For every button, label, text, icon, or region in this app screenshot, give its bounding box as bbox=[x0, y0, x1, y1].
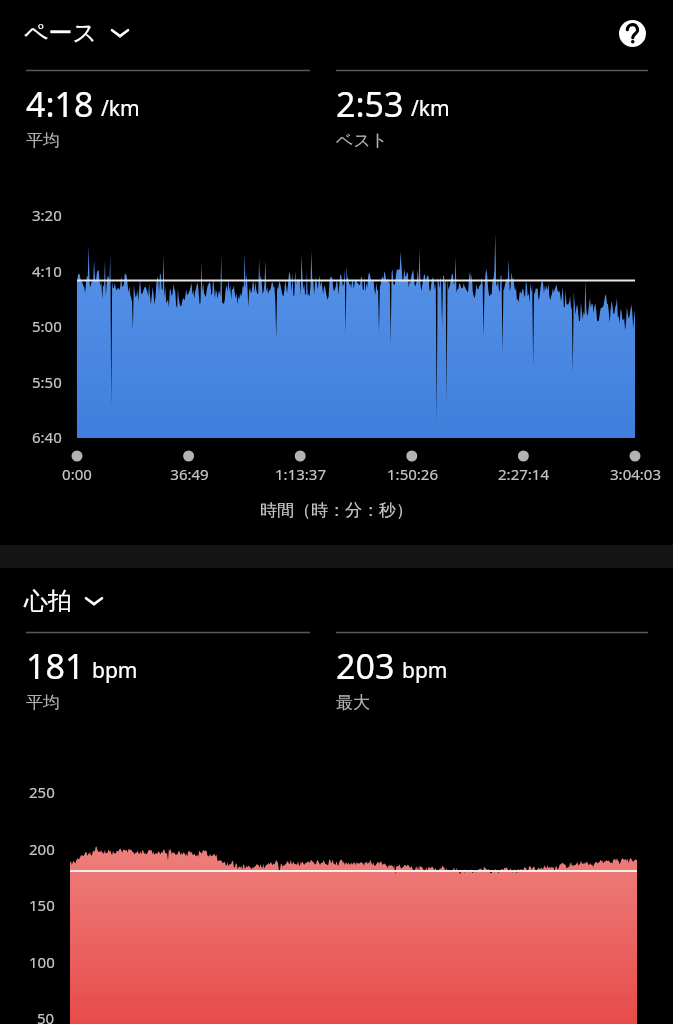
button[interactable]: ヘルプ bbox=[617, 18, 647, 48]
button[interactable]: 4:18 bbox=[26, 66, 310, 151]
staticText: 150 bbox=[29, 895, 55, 915]
button[interactable]: ペース bbox=[24, 18, 136, 48]
staticText: 1:13:37 bbox=[275, 464, 326, 484]
staticText: 5:50 bbox=[32, 372, 62, 392]
staticText: 250 bbox=[29, 782, 55, 802]
staticText: 平均 bbox=[26, 130, 60, 151]
staticText: 5:00 bbox=[32, 316, 62, 336]
staticText: bpm bbox=[402, 656, 448, 685]
button[interactable]: 181 bbox=[26, 628, 310, 713]
staticText: 最大 bbox=[336, 692, 370, 713]
staticText: /km bbox=[101, 94, 140, 123]
button[interactable]: 2:53 bbox=[336, 66, 648, 151]
staticText: 203 bbox=[336, 643, 395, 689]
staticText: 0:00 bbox=[62, 464, 92, 484]
staticText: 心拍 bbox=[24, 586, 72, 616]
button[interactable]: 心拍 bbox=[24, 586, 110, 616]
staticText: ベスト bbox=[336, 130, 389, 151]
button[interactable]: 203 bbox=[336, 628, 648, 713]
staticText: 2:53 bbox=[336, 81, 404, 127]
staticText: 4:10 bbox=[32, 261, 62, 281]
staticText: 平均 bbox=[26, 692, 60, 713]
staticText: 4:18 bbox=[26, 81, 94, 127]
staticText: /km bbox=[411, 94, 450, 123]
staticText: 100 bbox=[29, 952, 55, 972]
staticText: bpm bbox=[92, 656, 138, 685]
staticText: 36:49 bbox=[170, 464, 209, 484]
staticText: 6:40 bbox=[32, 427, 62, 447]
staticText: 時間（時：分：秒） bbox=[260, 500, 413, 521]
staticText: ペース bbox=[24, 18, 98, 48]
staticText: 3:04:03 bbox=[610, 464, 661, 484]
staticText: 2:27:14 bbox=[498, 464, 549, 484]
staticText: 200 bbox=[29, 839, 55, 859]
staticText: 181 bbox=[26, 643, 85, 689]
staticText: 1:50:26 bbox=[387, 464, 438, 484]
staticText: 3:20 bbox=[32, 205, 62, 225]
staticText: 50 bbox=[37, 1008, 55, 1024]
